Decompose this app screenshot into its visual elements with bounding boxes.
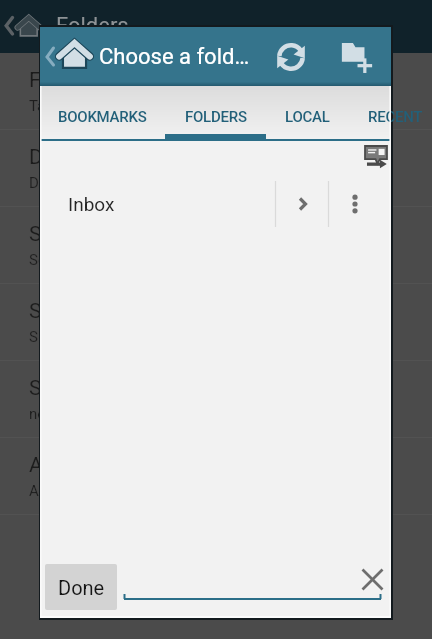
button[interactable]: Done [45, 564, 117, 610]
staticText: new items [29, 405, 98, 423]
staticText: Folders [29, 68, 99, 93]
button[interactable]: Share [360, 141, 392, 173]
staticText: Downloads [29, 145, 134, 170]
staticText: Sent items [29, 251, 101, 269]
staticText: BOOKMARKS [58, 108, 147, 126]
button[interactable]: Downloads [0, 130, 432, 207]
button[interactable]: Archive [0, 438, 432, 515]
button[interactable]: Open folder [276, 180, 329, 228]
button[interactable]: Inbox [40, 180, 275, 228]
button[interactable]: Folders [0, 53, 432, 130]
staticText: Spam folder [29, 328, 111, 346]
staticText: Done [58, 576, 105, 599]
button[interactable]: New folder [327, 27, 387, 86]
button[interactable]: Refresh [261, 27, 321, 86]
staticText: Downloaded [29, 174, 113, 192]
button[interactable]: More options [329, 180, 381, 228]
staticText: Sent [29, 222, 72, 247]
button[interactable]: BOOKMARKS [40, 86, 165, 141]
button[interactable]: Clear [352, 559, 392, 599]
staticText: Choose a fold… [99, 44, 250, 70]
staticText: FOLDERS [185, 108, 247, 126]
button[interactable]: Sent [0, 207, 432, 284]
staticText: LOCAL [285, 108, 330, 126]
button[interactable]: Choose a fold… [40, 27, 290, 86]
staticText: Archive [29, 453, 99, 478]
staticText: Archived [29, 482, 88, 500]
staticText: Tap here to [29, 97, 104, 115]
button[interactable]: Spam [0, 284, 432, 361]
button[interactable]: Starred [0, 361, 432, 438]
staticText: RECENT [368, 108, 423, 126]
button[interactable]: LOCAL [266, 86, 348, 141]
button[interactable]: FOLDERS [165, 86, 266, 141]
staticText: Starred [29, 376, 97, 401]
staticText: Inbox [68, 193, 115, 215]
staticText: Folders [56, 13, 129, 39]
staticText: Spam [29, 299, 84, 324]
button[interactable]: RECENT [348, 86, 432, 141]
